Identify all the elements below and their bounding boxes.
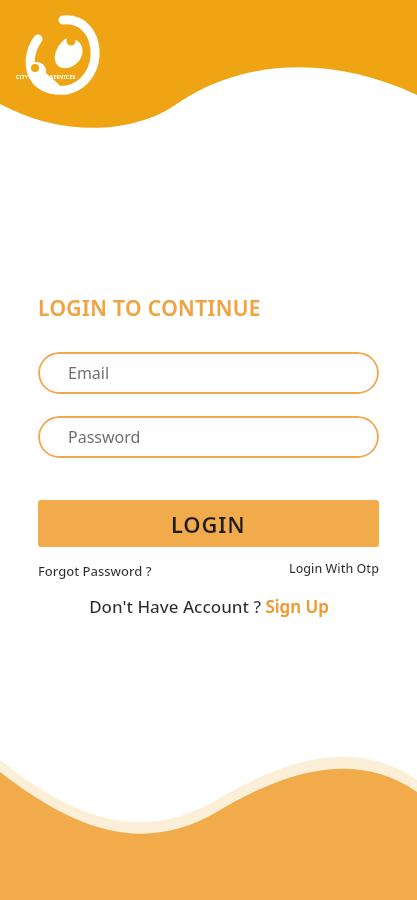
button[interactable]: Password xyxy=(38,416,379,458)
button[interactable]: LOGIN xyxy=(38,500,379,547)
staticText: Don't Have Account ? Sign Up xyxy=(89,595,329,618)
button[interactable]: Email xyxy=(38,352,379,394)
staticText: Login With Otp xyxy=(289,560,379,577)
staticText: Email xyxy=(68,362,110,384)
staticText: Forgot Password ? xyxy=(38,562,152,580)
staticText: LOGIN TO CONTINUE xyxy=(38,294,261,323)
button[interactable]: Forgot Password ? xyxy=(38,559,152,583)
staticText: Password xyxy=(68,426,141,448)
staticText: LOGIN xyxy=(171,509,246,539)
staticText: CITY SMART SERVICES xyxy=(16,74,76,81)
button[interactable]: Login With Otp xyxy=(289,557,379,580)
button[interactable]: Don't Have Account ? Sign Up xyxy=(38,595,379,618)
other: City Smart Services logo xyxy=(14,8,110,88)
